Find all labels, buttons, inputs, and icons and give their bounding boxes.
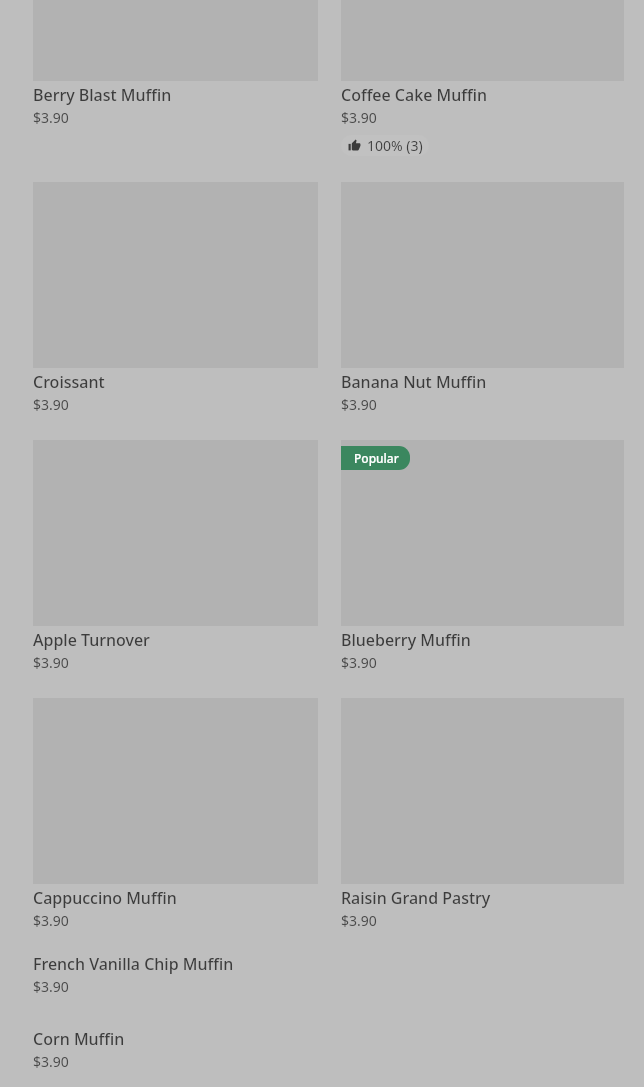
staticText: Raisin Grand Pastry bbox=[341, 887, 491, 909]
button[interactable]: Banana Nut Muffin bbox=[341, 182, 624, 414]
other: Thumbs up rating bbox=[348, 139, 361, 152]
staticText: $3.90 bbox=[33, 1052, 69, 1071]
button[interactable]: Corn Muffin bbox=[33, 1028, 318, 1071]
button[interactable]: Croissant bbox=[33, 182, 318, 414]
staticText: $3.90 bbox=[33, 653, 69, 672]
button[interactable]: Popular bbox=[341, 446, 410, 470]
staticText: $3.90 bbox=[341, 911, 377, 930]
staticText: $3.90 bbox=[341, 108, 377, 127]
staticText: Apple Turnover bbox=[33, 629, 150, 651]
staticText: Coffee Cake Muffin bbox=[341, 84, 487, 106]
staticText: $3.90 bbox=[33, 108, 69, 127]
button[interactable]: Cappuccino Muffin bbox=[33, 698, 318, 930]
button[interactable]: French Vanilla Chip Muffin bbox=[33, 953, 318, 996]
staticText: Corn Muffin bbox=[33, 1028, 125, 1050]
button[interactable]: Raisin Grand Pastry bbox=[341, 698, 624, 930]
staticText: Croissant bbox=[33, 371, 105, 393]
button[interactable]: Berry Blast Muffin bbox=[33, 0, 318, 127]
staticText: 100% (3) bbox=[367, 136, 423, 155]
staticText: Blueberry Muffin bbox=[341, 629, 471, 651]
staticText: Popular bbox=[354, 450, 399, 466]
staticText: $3.90 bbox=[341, 653, 377, 672]
staticText: Berry Blast Muffin bbox=[33, 84, 172, 106]
button[interactable]: Popular bbox=[341, 440, 624, 672]
staticText: $3.90 bbox=[33, 977, 69, 996]
staticText: $3.90 bbox=[33, 911, 69, 930]
staticText: Cappuccino Muffin bbox=[33, 887, 177, 909]
button[interactable]: Coffee Cake Muffin bbox=[341, 0, 624, 156]
staticText: $3.90 bbox=[341, 395, 377, 414]
staticText: French Vanilla Chip Muffin bbox=[33, 953, 234, 975]
button[interactable]: Apple Turnover bbox=[33, 440, 318, 672]
staticText: $3.90 bbox=[33, 395, 69, 414]
staticText: Banana Nut Muffin bbox=[341, 371, 487, 393]
button[interactable]: Thumbs up rating bbox=[341, 135, 429, 156]
